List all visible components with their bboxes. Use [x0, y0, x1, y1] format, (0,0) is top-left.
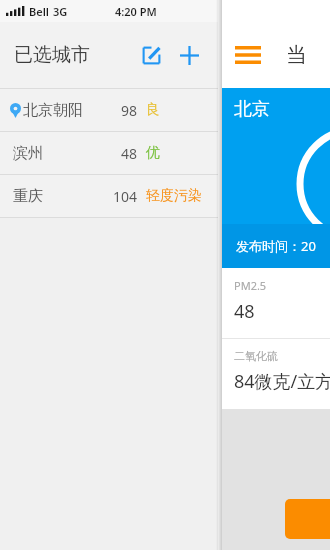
- button[interactable]: 重庆: [0, 175, 218, 217]
- staticText: 已选城市: [14, 43, 90, 67]
- staticText: 轻度污染: [146, 187, 202, 205]
- staticText: 84微克/立方: [234, 369, 330, 394]
- staticText: 48: [234, 299, 255, 324]
- button[interactable]: 滨州: [0, 132, 218, 174]
- staticText: 良: [146, 101, 160, 119]
- button[interactable]: Menu: [232, 39, 264, 71]
- staticText: Bell: [29, 4, 49, 19]
- staticText: 发布时间：20: [236, 237, 316, 255]
- staticText: 北京: [234, 98, 270, 121]
- staticText: 北京朝阳: [23, 101, 83, 120]
- staticText: 滨州: [13, 144, 43, 163]
- button[interactable]: PM2.5: [222, 268, 330, 338]
- button[interactable]: Action: [285, 499, 330, 539]
- staticText: 104: [113, 187, 138, 206]
- staticText: PM2.5: [234, 278, 267, 293]
- button[interactable]: Add city: [174, 40, 204, 70]
- button[interactable]: 二氧化硫: [222, 339, 330, 409]
- staticText: 二氧化硫: [234, 349, 278, 363]
- staticText: 98: [121, 101, 138, 120]
- staticText: 48: [121, 144, 138, 163]
- button[interactable]: Edit: [136, 40, 166, 70]
- staticText: 3G: [53, 4, 68, 19]
- staticText: 重庆: [13, 187, 43, 206]
- staticText: 优: [146, 144, 160, 162]
- button[interactable]: 北京朝阳: [0, 89, 218, 131]
- staticText: 4:20 PM: [115, 4, 157, 19]
- staticText: 当: [286, 42, 307, 68]
